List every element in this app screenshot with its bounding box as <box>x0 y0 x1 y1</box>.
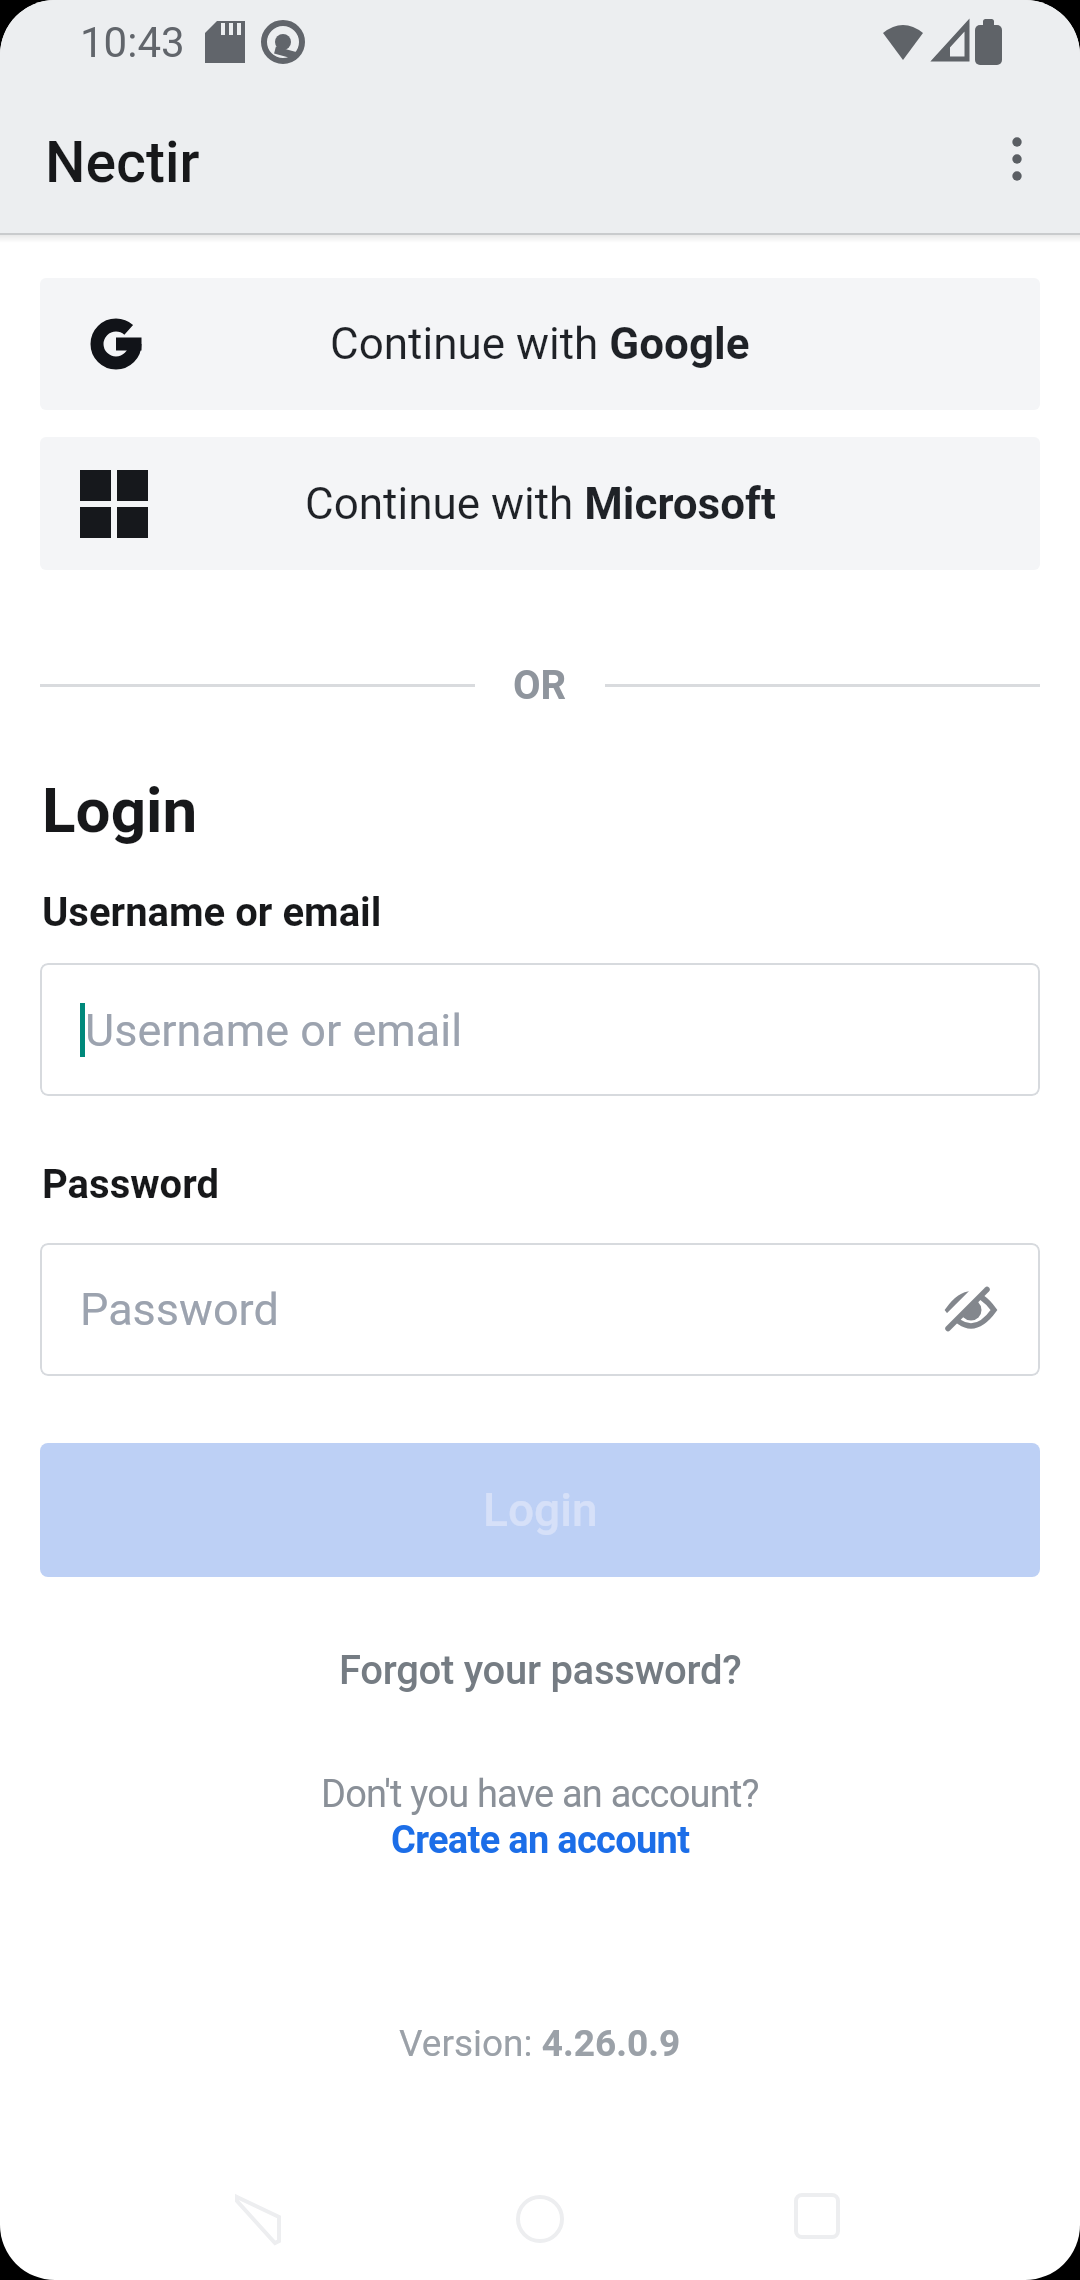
button[interactable]: Create an account <box>391 1818 690 1863</box>
button[interactable]: Username or email <box>40 963 1040 1096</box>
button[interactable]: Continue with Google <box>40 278 1040 410</box>
staticText: Password <box>80 1283 279 1336</box>
staticText: 10:43 <box>80 18 185 67</box>
button[interactable] <box>988 130 1046 188</box>
button[interactable]: Continue with Microsoft <box>40 437 1040 570</box>
staticText: Continue with Microsoft <box>305 478 776 530</box>
staticText: Don't you have an account? <box>321 1772 759 1817</box>
staticText: Login <box>42 774 198 847</box>
staticText: Version: 4.26.0.9 <box>399 2022 681 2065</box>
staticText: Forgot your password? <box>339 1647 742 1694</box>
staticText: Username or email <box>42 889 382 936</box>
staticText: Password <box>42 1161 220 1208</box>
staticText: Nectir <box>45 129 200 196</box>
staticText: Login <box>483 1483 598 1537</box>
button[interactable]: Forgot your password? <box>339 1647 742 1694</box>
button[interactable]: Password <box>40 1243 1040 1376</box>
staticText: Create an account <box>391 1818 690 1863</box>
staticText: OR <box>513 662 567 709</box>
staticText: Continue with Google <box>330 318 750 370</box>
staticText: Username or email <box>85 1004 463 1057</box>
